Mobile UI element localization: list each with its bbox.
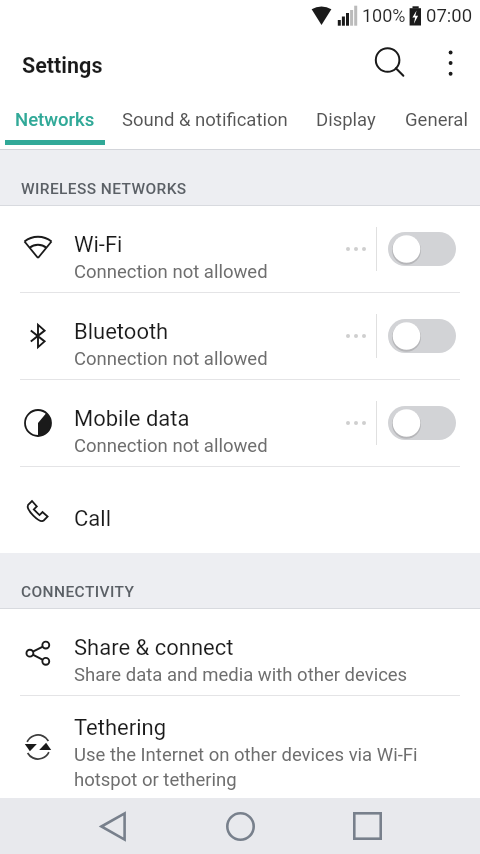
staticText: Settings	[22, 53, 103, 78]
button[interactable]: Toggle Mobile data	[388, 406, 456, 440]
staticText: CONNECTIVITY	[21, 583, 135, 601]
staticText: Networks	[15, 109, 95, 131]
staticText: Wi-Fi	[74, 232, 123, 258]
staticText: 100%	[362, 5, 406, 26]
button[interactable]: Toggle Wi-Fi	[388, 232, 456, 266]
staticText: Connection not allowed	[74, 348, 268, 370]
staticText: General	[405, 109, 468, 131]
button[interactable]: More options	[430, 35, 474, 98]
button[interactable]: Networks	[5, 98, 105, 145]
staticText: Use the Internet on other devices via Wi…	[74, 744, 424, 790]
staticText: Bluetooth	[74, 319, 169, 345]
staticText: Connection not allowed	[74, 261, 268, 283]
staticText: Call	[74, 506, 111, 532]
staticText: Sound & notification	[122, 109, 288, 131]
staticText: WIRELESS NETWORKS	[21, 180, 187, 198]
button[interactable]: General	[396, 98, 477, 145]
button[interactable]: Call	[0, 467, 480, 553]
button[interactable]: Mobile data	[0, 380, 480, 466]
staticText: Mobile data	[74, 406, 190, 432]
button[interactable]: Toggle Bluetooth	[388, 319, 456, 353]
button[interactable]: Sound & notification	[112, 98, 298, 145]
button[interactable]: Bluetooth	[0, 293, 480, 379]
staticText: Tethering	[74, 715, 167, 741]
button[interactable]: Share & connect	[0, 609, 480, 695]
button[interactable]: Recent apps	[327, 798, 407, 854]
staticText: Share data and media with other devices	[74, 664, 408, 686]
button[interactable]: Wi-Fi	[0, 206, 480, 292]
button[interactable]: Display	[306, 98, 386, 145]
staticText: Display	[316, 109, 376, 131]
button[interactable]: Home	[200, 798, 280, 854]
staticText: Share & connect	[74, 635, 234, 661]
staticText: Connection not allowed	[74, 435, 268, 457]
button[interactable]: Back	[73, 798, 153, 854]
button[interactable]: Search	[366, 35, 416, 98]
staticText: 07:00	[426, 5, 473, 27]
button[interactable]: Tethering	[0, 696, 480, 798]
